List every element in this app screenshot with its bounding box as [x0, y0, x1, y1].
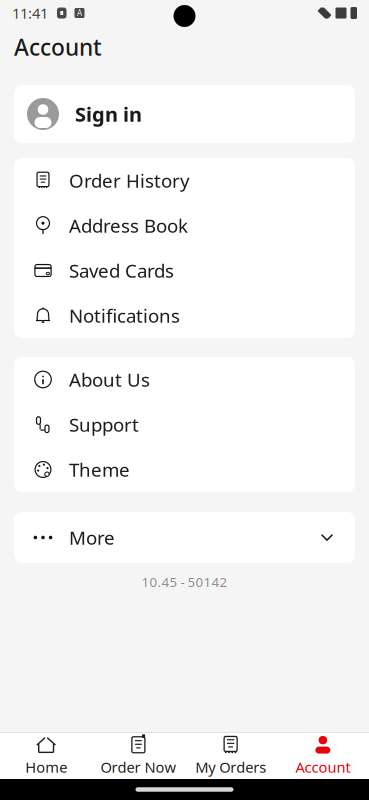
button[interactable]: My Orders [184, 733, 277, 779]
staticText: Address Book [69, 213, 188, 238]
staticText: About Us [69, 367, 150, 392]
staticText: Notifications [69, 303, 180, 328]
staticText: Saved Cards [69, 258, 174, 283]
button[interactable]: Support [14, 402, 355, 447]
staticText: Order History [69, 168, 190, 193]
button[interactable]: Sign in [0, 85, 369, 143]
staticText: My Orders [195, 757, 266, 777]
button[interactable]: Address Book [14, 203, 355, 248]
button[interactable]: Theme [14, 447, 355, 492]
staticText: 10.45 - 50142 [141, 573, 227, 591]
button[interactable]: Account [277, 733, 369, 779]
button[interactable]: Saved Cards [14, 248, 355, 293]
staticText: Theme [69, 457, 130, 482]
staticText: Home [25, 757, 67, 777]
button[interactable]: About Us [14, 357, 355, 402]
staticText: Account [14, 32, 102, 62]
staticText: Order Now [100, 757, 176, 777]
button[interactable]: Order History [14, 158, 355, 203]
button[interactable]: Notifications [14, 293, 355, 338]
staticText: Support [69, 412, 139, 437]
button[interactable]: Order Now [92, 733, 184, 779]
staticText: 11:41 [12, 3, 48, 23]
staticText: Account [295, 757, 350, 777]
staticText: More [69, 525, 115, 550]
staticText: A [77, 8, 82, 18]
button[interactable]: More [0, 512, 369, 563]
staticText: Sign in [75, 101, 142, 127]
button[interactable]: Home [0, 733, 92, 779]
